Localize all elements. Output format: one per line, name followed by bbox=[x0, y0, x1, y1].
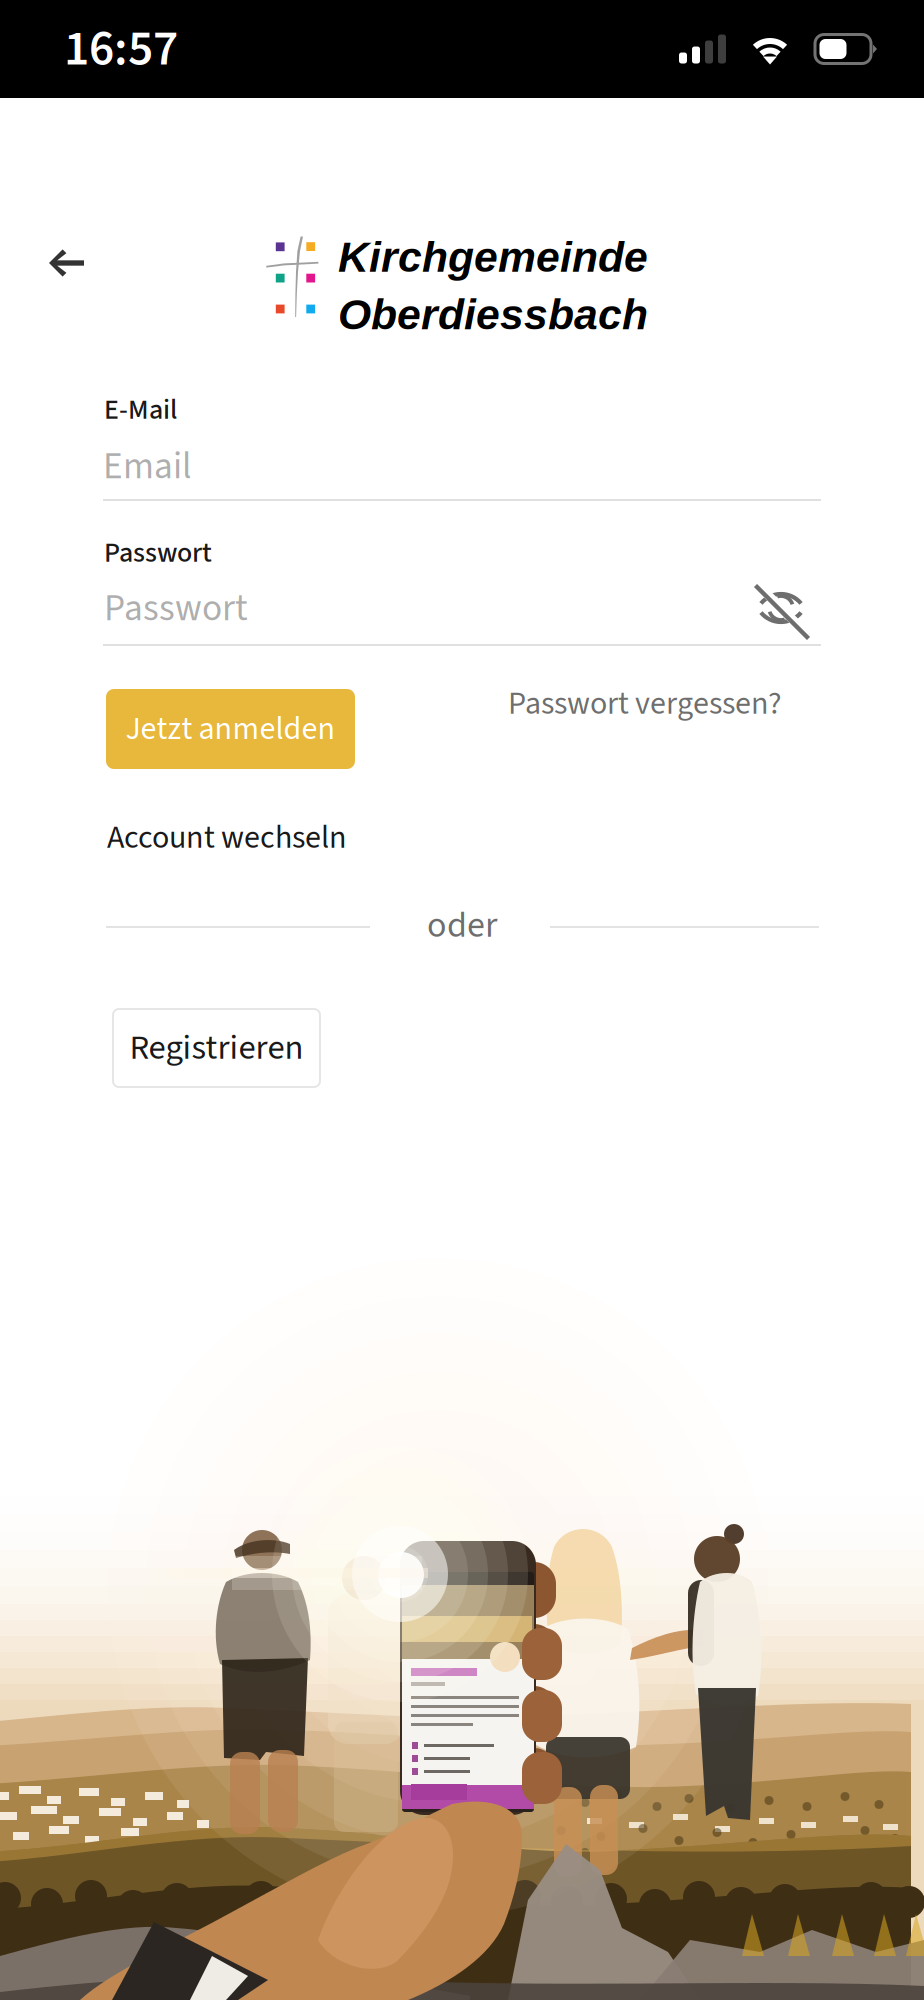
staticText: oder bbox=[427, 900, 497, 951]
staticText: Kirchgemeinde bbox=[338, 233, 648, 281]
button[interactable]: Registrieren bbox=[113, 1009, 320, 1087]
staticText: Account wechseln bbox=[107, 815, 347, 861]
button[interactable]: Account wechseln bbox=[107, 809, 347, 867]
staticText: Passwort bbox=[104, 582, 248, 635]
button[interactable]: Jetzt anmelden bbox=[106, 689, 355, 769]
button[interactable]: Passwort vergessen? bbox=[500, 673, 790, 735]
staticText: Oberdiessbach bbox=[338, 291, 648, 338]
staticText: Email bbox=[103, 440, 192, 493]
button[interactable]: Back bbox=[29, 225, 105, 301]
staticText: Jetzt anmelden bbox=[125, 706, 335, 752]
staticText: Registrieren bbox=[129, 1023, 303, 1073]
staticText: E-Mail bbox=[104, 390, 177, 430]
staticText: Passwort vergessen? bbox=[508, 681, 782, 727]
staticText: 16:57 bbox=[64, 14, 178, 84]
staticText: Passwort bbox=[104, 533, 212, 573]
button[interactable]: Show password bbox=[750, 584, 812, 642]
